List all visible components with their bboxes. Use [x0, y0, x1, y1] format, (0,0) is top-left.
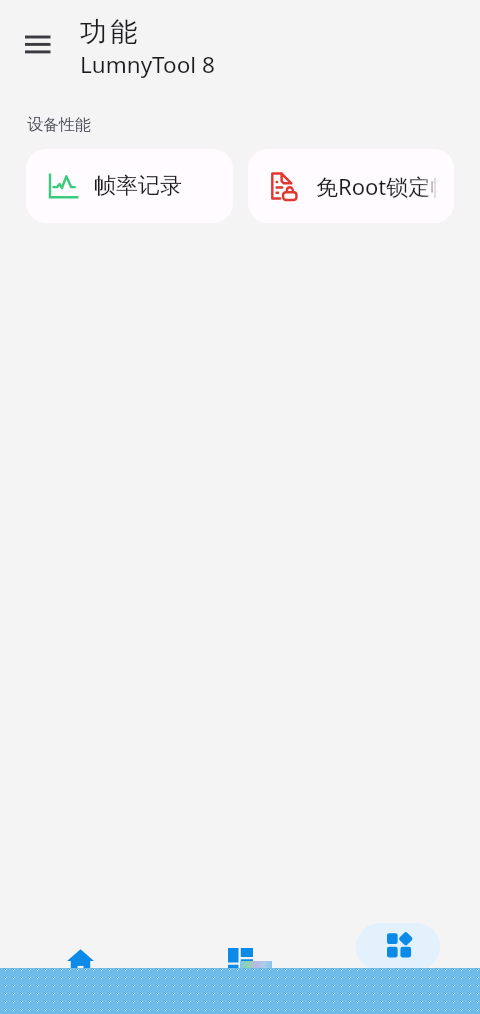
- button[interactable]: 帧率记录: [26, 149, 233, 223]
- button[interactable]: Home: [40, 923, 120, 971]
- button[interactable]: 免Root锁定帧率: [248, 149, 454, 223]
- staticText: 帧率记录: [94, 172, 182, 200]
- button[interactable]: Dashboard: [200, 923, 280, 971]
- staticText: LumnyTool 8: [80, 49, 215, 80]
- staticText: 设备性能: [27, 115, 91, 135]
- staticText: 功能: [80, 15, 141, 49]
- button[interactable]: Tools: [356, 923, 440, 971]
- button[interactable]: Menu: [12, 24, 62, 66]
- staticText: 免Root锁定帧率: [316, 171, 454, 201]
